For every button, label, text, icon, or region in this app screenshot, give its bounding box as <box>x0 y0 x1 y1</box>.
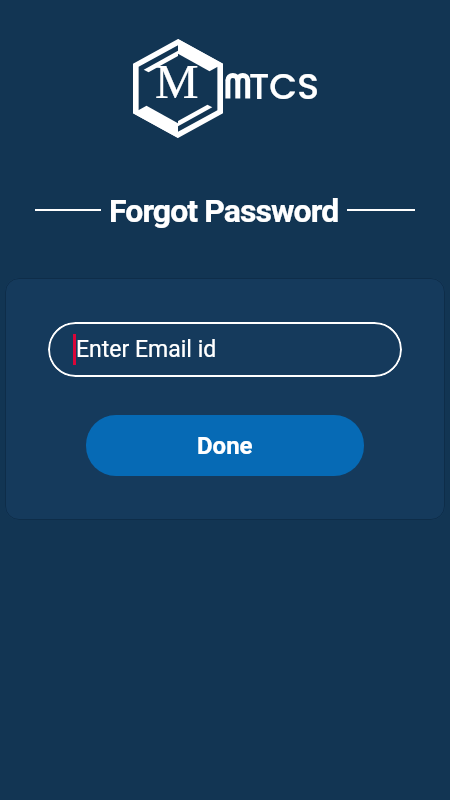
button[interactable]: Done <box>86 415 364 476</box>
staticText: Enter Email id <box>76 336 217 363</box>
staticText: Done <box>197 432 253 460</box>
staticText: M <box>155 54 199 108</box>
button[interactable]: Enter Email id <box>48 322 402 377</box>
staticText: Forgot Password <box>109 192 339 228</box>
staticText: TCS <box>249 61 319 111</box>
other: mTCS logo <box>0 0 450 150</box>
